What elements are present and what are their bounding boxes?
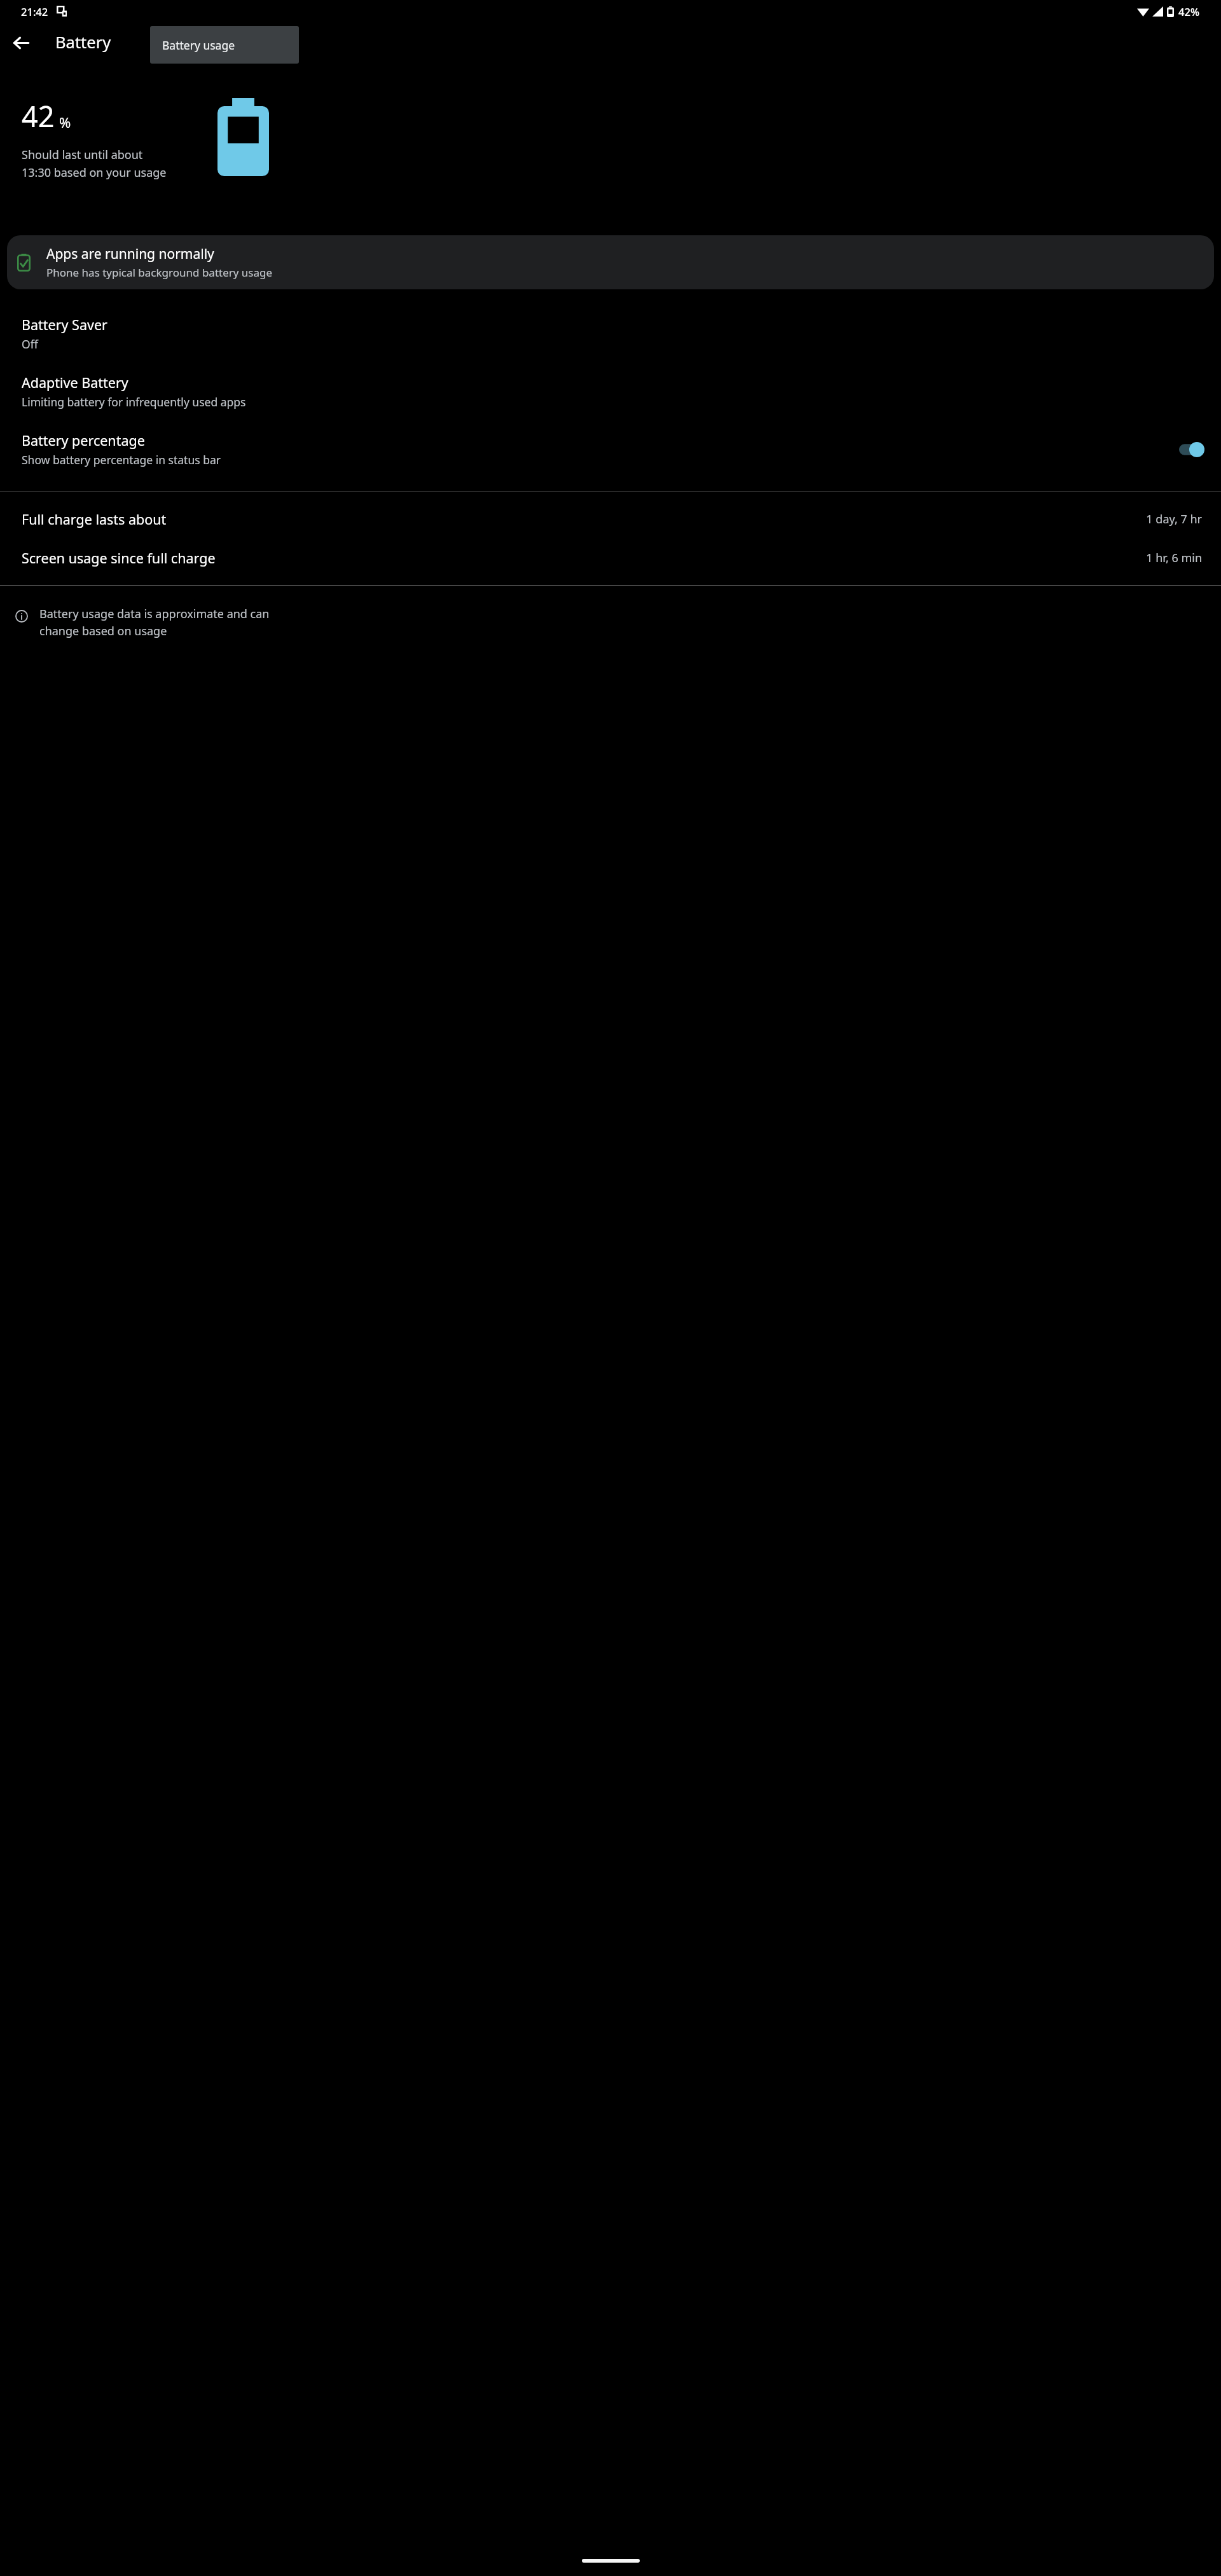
staticText: Limiting battery for infrequently used a… <box>22 394 246 410</box>
button[interactable]: Screen usage since full charge <box>0 549 1221 567</box>
button[interactable]: Battery percentage <box>0 431 1221 467</box>
button[interactable]: Battery Saver <box>0 315 1221 352</box>
staticText: Full charge lasts about <box>22 510 1146 528</box>
staticText: Apps are running normally <box>46 245 214 263</box>
staticText: Screen usage since full charge <box>22 549 1146 567</box>
staticText: 13:30 based on your usage <box>22 165 167 181</box>
staticText: Should last until about <box>22 147 143 163</box>
staticText: Battery usage <box>162 38 235 53</box>
staticText: 42% <box>1178 4 1199 18</box>
button[interactable]: Adaptive Battery <box>0 373 1221 410</box>
staticText: Off <box>22 336 38 352</box>
button[interactable]: Battery usage <box>150 26 299 64</box>
staticText: 42 <box>22 97 55 135</box>
staticText: % <box>59 113 71 132</box>
staticText: 21:42 <box>21 4 48 18</box>
staticText: change based on usage <box>39 623 167 639</box>
staticText: Adaptive Battery <box>22 373 128 392</box>
staticText: Battery Saver <box>22 315 107 334</box>
button[interactable]: Full charge lasts about <box>0 510 1221 528</box>
button[interactable]: Apps are running normally <box>7 235 1214 289</box>
staticText: Show battery percentage in status bar <box>22 452 221 467</box>
button[interactable]: Back <box>9 31 33 55</box>
staticText: Battery usage data is approximate and ca… <box>39 606 270 622</box>
staticText: Battery percentage <box>22 431 145 450</box>
button[interactable]: Battery usage data is approximate and ca… <box>0 598 1221 639</box>
button[interactable]: Battery percentage toggle <box>1179 442 1204 457</box>
staticText: 1 hr, 6 min <box>1146 550 1202 566</box>
staticText: 1 day, 7 hr <box>1146 511 1202 527</box>
staticText: Phone has typical background battery usa… <box>46 265 273 280</box>
staticText: Battery <box>55 31 111 53</box>
